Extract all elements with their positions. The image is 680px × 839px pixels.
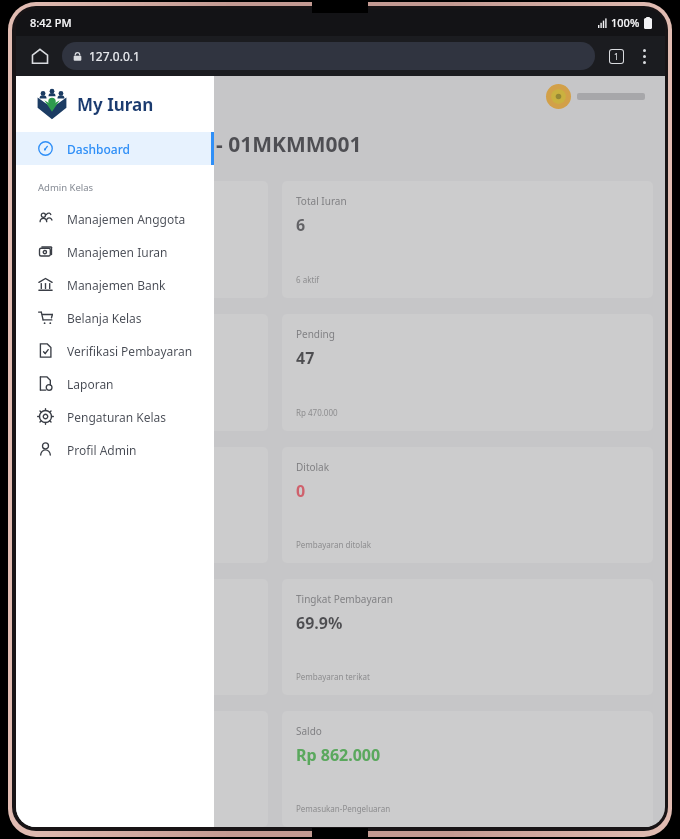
staticText: 0 [296, 480, 306, 502]
staticText: Tingkat Pembayaran [296, 592, 393, 606]
staticText: Pembayaran terikat [296, 671, 370, 682]
staticText: Manajemen Anggota [67, 211, 186, 227]
button[interactable]: Verifikasi Pembayaran [16, 334, 214, 367]
staticText: 1 [614, 51, 619, 62]
staticText: 100% [611, 15, 640, 30]
button[interactable]: Dashboard [16, 132, 214, 165]
button[interactable]: More options [631, 43, 657, 69]
staticText: Dashboard [67, 141, 130, 157]
button[interactable]: 127.0.0.1 [62, 42, 595, 70]
staticText: Admin Kelas [38, 181, 94, 194]
staticText: Manajemen Bank [67, 277, 166, 293]
button[interactable]: Laporan [16, 367, 214, 400]
staticText: Pending [296, 327, 335, 341]
button[interactable]: Manajemen Iuran [16, 235, 214, 268]
staticText: Pembayaran ditolak [296, 539, 371, 550]
staticText: Pemasukan-Pengeluaran [296, 803, 391, 814]
staticText: Total Iuran [296, 194, 347, 208]
staticText: Pengaturan Kelas [67, 409, 167, 425]
staticText: 69.9% [296, 612, 343, 634]
staticText: Ditolak [296, 460, 330, 474]
staticText: Rp 470.000 [296, 407, 338, 418]
staticText: Laporan [67, 376, 114, 392]
button[interactable]: Home [24, 40, 56, 72]
staticText: 47 [296, 347, 315, 369]
button[interactable]: Pengaturan Kelas [16, 400, 214, 433]
staticText: Verifikasi Pembayaran [67, 343, 193, 359]
staticText: Rp 862.000 [296, 744, 381, 766]
staticText: - 01MKMM001 [216, 130, 362, 159]
button[interactable]: Tabs [601, 41, 631, 71]
button[interactable]: Belanja Kelas [16, 301, 214, 334]
staticText: Saldo [296, 724, 322, 738]
staticText: Manajemen Iuran [67, 244, 168, 260]
button[interactable]: Manajemen Bank [16, 268, 214, 301]
button[interactable]: Manajemen Anggota [16, 202, 214, 235]
staticText: 8:42 PM [30, 15, 72, 30]
staticText: My Iuran [77, 93, 154, 116]
staticText: Profil Admin [67, 442, 137, 458]
button[interactable]: Profil Admin [16, 433, 214, 466]
staticText: Belanja Kelas [67, 310, 142, 326]
staticText: 6 [296, 214, 306, 236]
staticText: 127.0.0.1 [89, 48, 140, 64]
staticText: 6 aktif [296, 274, 320, 285]
